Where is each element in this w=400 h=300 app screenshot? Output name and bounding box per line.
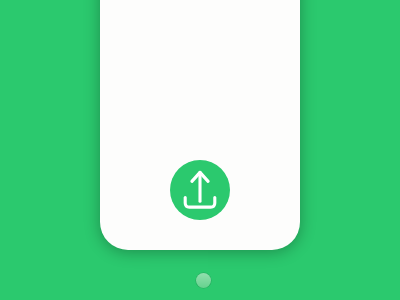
- button[interactable]: Upload: [170, 160, 230, 220]
- button[interactable]: Home: [195, 272, 212, 289]
